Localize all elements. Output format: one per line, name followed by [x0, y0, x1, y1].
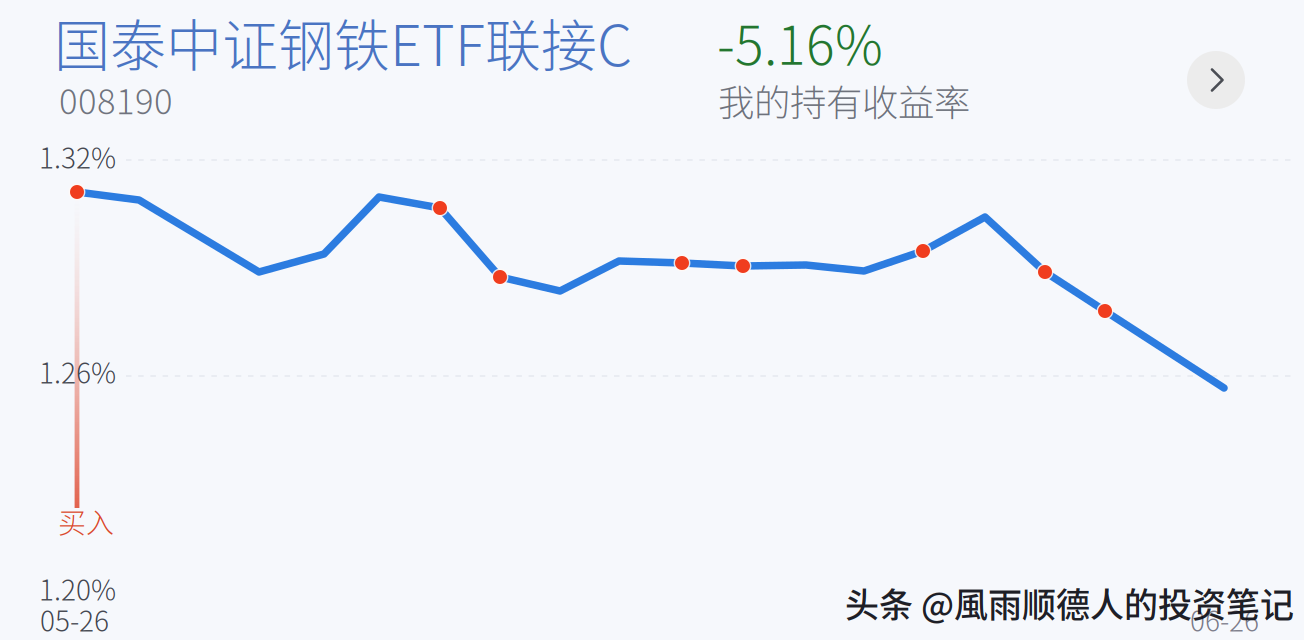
staticText: 1.26% [39, 351, 116, 391]
staticText: 008190 [59, 74, 173, 124]
staticText: 我的持有收益率 [718, 74, 970, 127]
staticText: 1.32% [39, 136, 116, 176]
staticText: -5.16% [717, 3, 883, 80]
staticText: 国泰中证钢铁ETF联接C [54, 1, 632, 82]
staticText: 买入 [58, 501, 114, 541]
staticText: 头条 @風雨顺德人的投资笔记 [845, 578, 1294, 627]
staticText: 05-26 [40, 599, 109, 639]
staticText: 1.20% [39, 568, 116, 608]
staticText: 06-26 [1190, 599, 1259, 639]
button[interactable]: Holdings detail [1187, 51, 1245, 109]
